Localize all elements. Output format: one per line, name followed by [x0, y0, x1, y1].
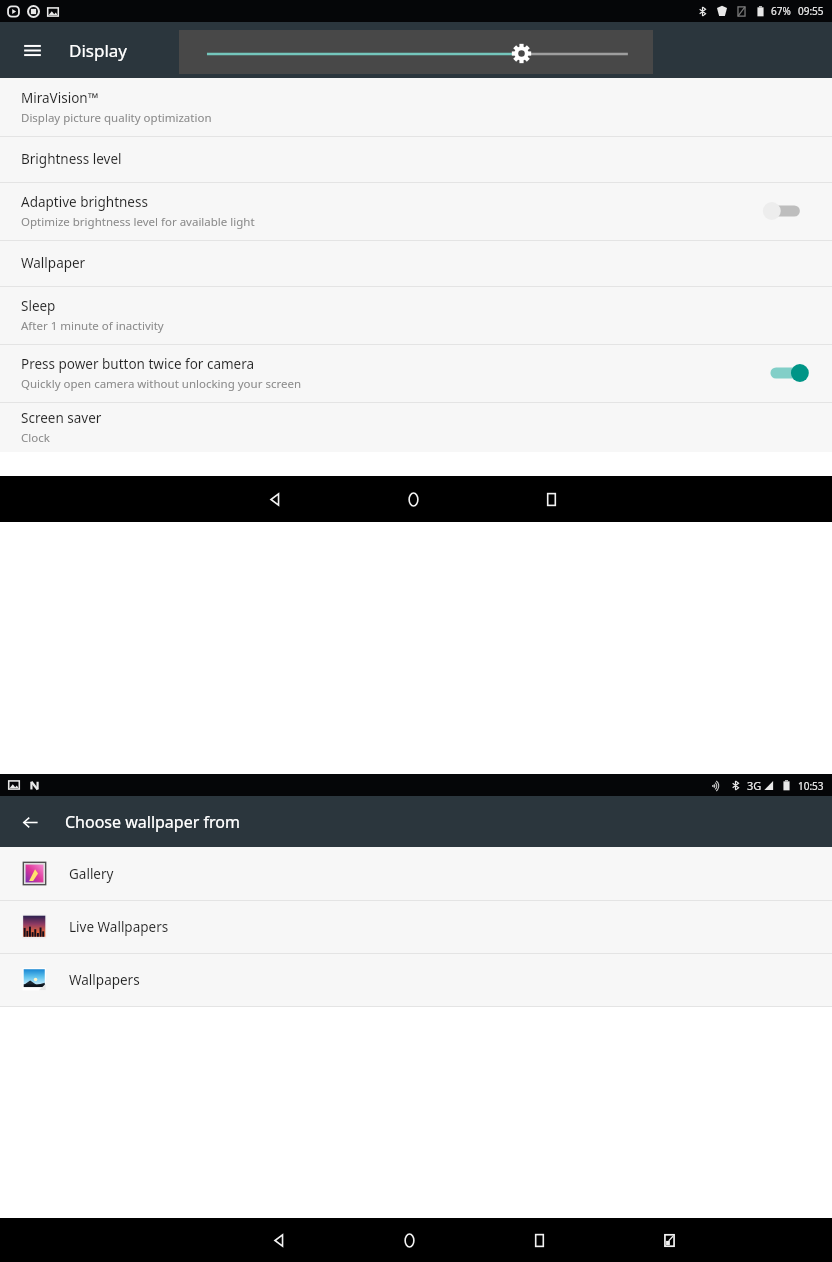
- staticText: Sleep: [21, 297, 56, 315]
- staticText: 3G: [747, 778, 762, 793]
- staticText: MiraVision™: [21, 89, 99, 107]
- staticText: Display: [69, 39, 127, 62]
- button[interactable]: Press power button twice for camera, on: [764, 359, 810, 387]
- staticText: Wallpapers: [69, 971, 140, 989]
- staticText: Screen saver: [21, 409, 102, 427]
- staticText: 09:55: [798, 4, 824, 18]
- staticText: 10:53: [798, 779, 824, 793]
- button[interactable]: Screenshot: [648, 1219, 690, 1261]
- staticText: 67%: [771, 4, 791, 18]
- staticText: Live Wallpapers: [69, 918, 169, 936]
- button[interactable]: Recents: [518, 1219, 560, 1261]
- button[interactable]: Back: [258, 1219, 300, 1261]
- button[interactable]: Adaptive brightness, off: [764, 197, 810, 225]
- button[interactable]: Brightness level: [0, 136, 832, 182]
- staticText: Brightness level: [21, 150, 122, 168]
- button[interactable]: Screen saver: [0, 402, 832, 452]
- button[interactable]: Brightness slider: [179, 30, 653, 74]
- button[interactable]: Press power button twice for camera: [0, 344, 832, 402]
- button[interactable]: Recents: [530, 478, 572, 520]
- staticText: Choose wallpaper from: [65, 811, 240, 833]
- staticText: Adaptive brightness: [21, 193, 148, 211]
- button[interactable]: Wallpapers: [0, 953, 832, 1006]
- staticText: Press power button twice for camera: [21, 355, 255, 373]
- button[interactable]: Adaptive brightness: [0, 182, 832, 240]
- button[interactable]: Live Wallpapers: [0, 900, 832, 953]
- button[interactable]: Wallpaper: [0, 240, 832, 286]
- button[interactable]: Sleep: [0, 286, 832, 344]
- button[interactable]: Home: [388, 1219, 430, 1261]
- button[interactable]: Gallery: [0, 847, 832, 900]
- staticText: Clock: [21, 430, 50, 446]
- button[interactable]: MiraVision™: [0, 78, 832, 136]
- staticText: Quickly open camera without unlocking yo…: [21, 376, 302, 392]
- staticText: After 1 minute of inactivity: [21, 318, 164, 334]
- button[interactable]: Back: [254, 478, 296, 520]
- staticText: Gallery: [69, 865, 114, 883]
- staticText: Optimize brightness level for available …: [21, 214, 255, 230]
- button[interactable]: Back: [11, 803, 49, 841]
- staticText: Wallpaper: [21, 254, 86, 272]
- button[interactable]: Home: [392, 478, 434, 520]
- staticText: Display picture quality optimization: [21, 110, 212, 126]
- button[interactable]: Open navigation drawer: [12, 30, 52, 70]
